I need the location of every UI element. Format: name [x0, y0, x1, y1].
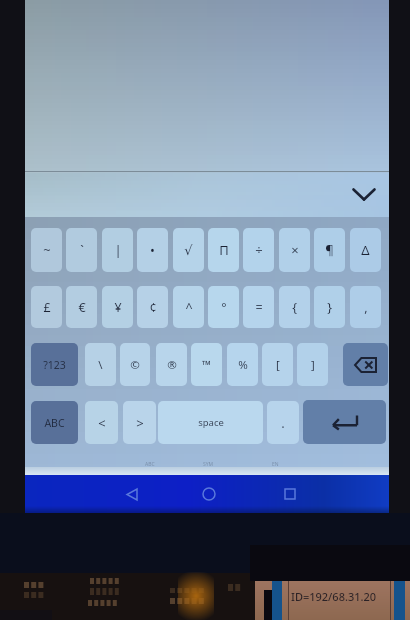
staticText: ?123	[43, 358, 66, 372]
staticText: ÷	[255, 241, 263, 259]
button[interactable]: ^	[173, 286, 204, 328]
button[interactable]: space	[158, 401, 263, 444]
button[interactable]: |	[102, 228, 133, 272]
button[interactable]: •	[137, 228, 168, 272]
staticText: |	[114, 241, 122, 259]
button[interactable]: }	[314, 286, 345, 328]
staticText: ™	[202, 357, 211, 373]
button[interactable]: ABC	[31, 401, 78, 444]
button[interactable]: Back	[110, 475, 154, 513]
staticText: SYM	[203, 461, 214, 468]
button[interactable]: Δ	[350, 228, 381, 272]
staticText: Δ	[361, 241, 370, 259]
staticText: ¥	[114, 299, 122, 316]
button[interactable]: %	[227, 343, 258, 386]
button[interactable]: €	[66, 286, 97, 328]
staticText: ¶	[325, 241, 334, 259]
button[interactable]: {	[279, 286, 310, 328]
staticText: =	[255, 299, 263, 316]
staticText: Π	[219, 241, 229, 259]
button[interactable]: <	[85, 401, 118, 444]
staticText: ©	[130, 357, 140, 373]
button[interactable]: Hide keyboard	[345, 174, 383, 215]
staticText: ®	[167, 357, 177, 373]
button[interactable]: ¶	[314, 228, 345, 272]
button[interactable]: ~	[31, 228, 62, 272]
staticText: ×	[291, 241, 299, 259]
button[interactable]: Π	[208, 228, 239, 272]
button[interactable]: ×	[279, 228, 310, 272]
staticText: °	[221, 299, 227, 316]
staticText: EN	[272, 461, 279, 468]
button[interactable]: >	[123, 401, 156, 444]
button[interactable]: ¥	[102, 286, 133, 328]
button[interactable]: °	[208, 286, 239, 328]
staticText: %	[238, 357, 248, 373]
staticText: {	[292, 299, 297, 316]
staticText: space	[198, 416, 224, 429]
staticText: ^	[185, 299, 193, 316]
staticText: ID=192/68.31.20	[291, 589, 377, 604]
button[interactable]: ]	[297, 343, 328, 386]
staticText: \	[98, 357, 103, 373]
staticText: ¢	[149, 299, 157, 316]
staticText: ,	[364, 299, 368, 316]
button[interactable]: Enter	[303, 400, 386, 444]
staticText: }	[327, 299, 332, 316]
button[interactable]: ®	[156, 343, 187, 386]
staticText: ~	[43, 241, 51, 259]
staticText: ABC	[44, 416, 65, 430]
staticText: <	[98, 414, 106, 432]
button[interactable]: £	[31, 286, 62, 328]
staticText: £	[43, 299, 51, 316]
staticText: ABC	[145, 461, 155, 468]
button[interactable]: Home	[187, 475, 231, 513]
button[interactable]: [	[262, 343, 293, 386]
button[interactable]: ¢	[137, 286, 168, 328]
button[interactable]: \	[85, 343, 116, 386]
button[interactable]: .	[267, 401, 299, 444]
button[interactable]: ™	[191, 343, 222, 386]
staticText: ]	[311, 357, 315, 373]
button[interactable]: ÷	[243, 228, 274, 272]
staticText: .	[281, 414, 285, 432]
button[interactable]: Backspace	[343, 343, 388, 386]
button[interactable]: Recent apps	[268, 475, 312, 513]
button[interactable]: ,	[350, 286, 381, 328]
button[interactable]: =	[243, 286, 274, 328]
staticText: >	[136, 414, 144, 432]
button[interactable]: ?123	[31, 343, 78, 386]
button[interactable]: √	[173, 228, 204, 272]
staticText: √	[184, 243, 193, 258]
staticText: [	[276, 357, 280, 373]
button[interactable]: `	[66, 228, 97, 272]
button[interactable]: ©	[120, 343, 150, 386]
staticText: `	[80, 241, 84, 259]
staticText: •	[150, 241, 155, 259]
staticText: €	[78, 299, 86, 316]
